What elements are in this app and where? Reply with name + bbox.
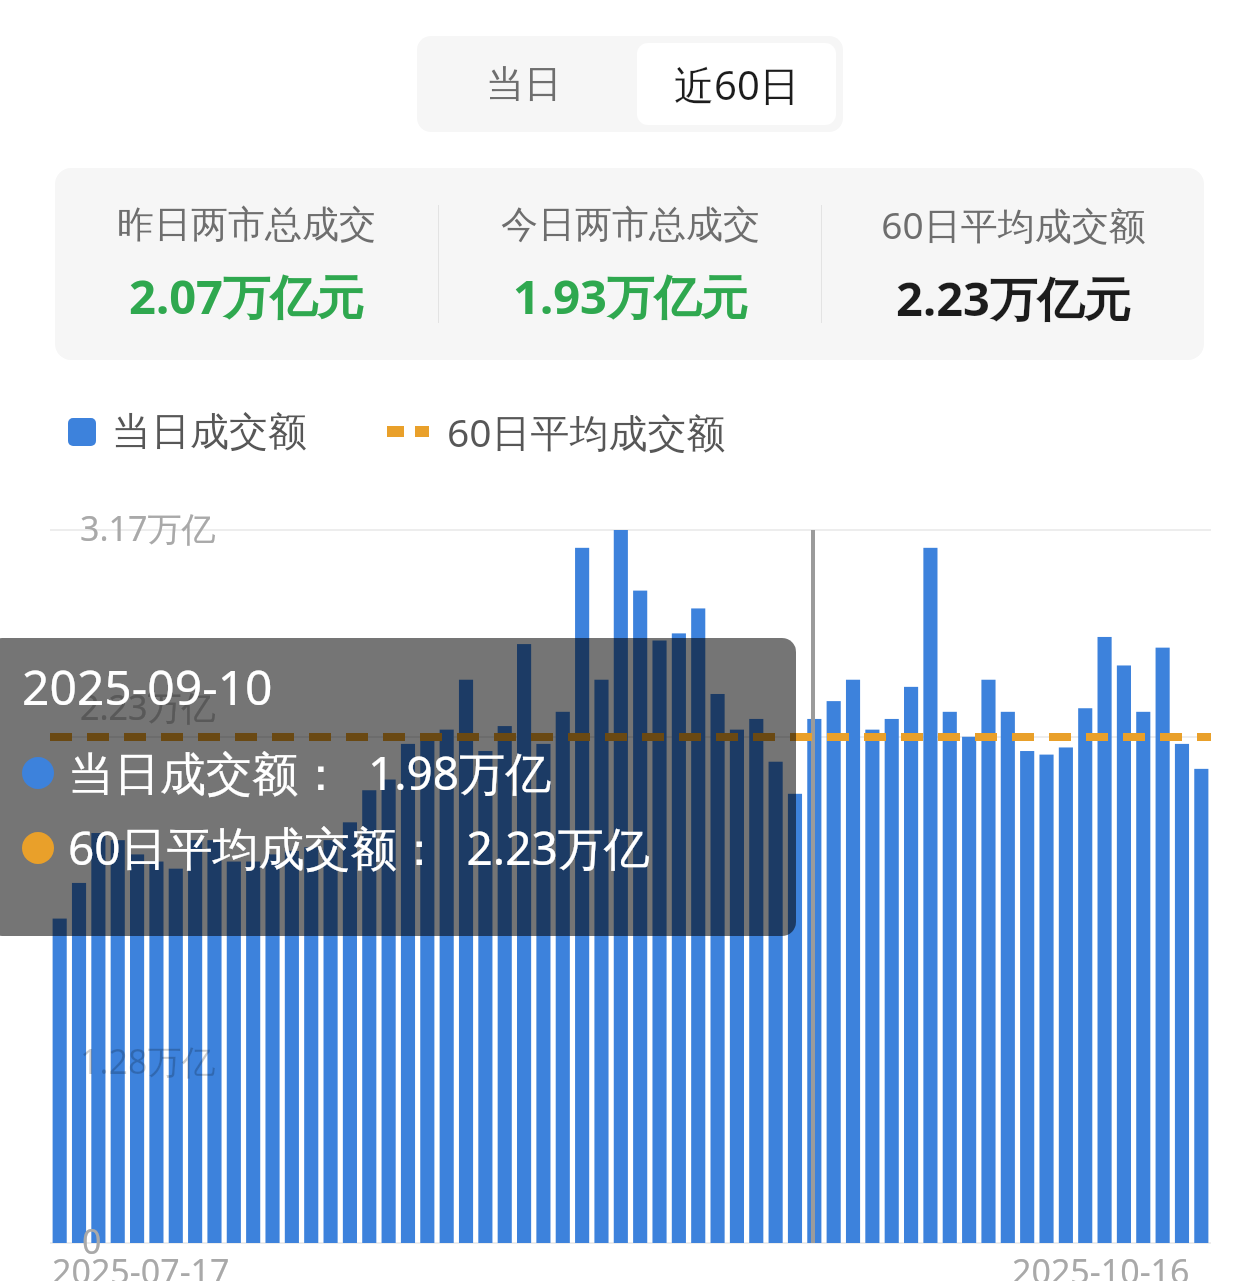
staticText: 今日两市总成交 [501, 201, 760, 248]
other: Data tooltip [0, 638, 796, 936]
staticText: 当日 [486, 60, 562, 108]
staticText: 近60日 [674, 57, 800, 112]
staticText: 60日平均成交额 [447, 405, 726, 458]
staticText: 60日平均成交额 [881, 199, 1146, 250]
staticText: 2025-10-16 [1012, 1248, 1190, 1281]
staticText: 3.17万亿 [80, 505, 216, 551]
staticText: 1.93万亿元 [513, 264, 748, 328]
staticText: 昨日两市总成交 [117, 201, 376, 248]
staticText: 60日平均成交额： 2.23万亿 [68, 816, 650, 879]
staticText: 2.07万亿元 [129, 264, 364, 328]
button[interactable]: 近60日 [637, 43, 836, 125]
staticText: 2025-07-17 [52, 1248, 230, 1281]
staticText: 2025-09-10 [22, 654, 273, 719]
staticText: 当日成交额： 1.98万亿 [68, 741, 552, 804]
staticText: 2.23万亿元 [896, 266, 1131, 330]
button[interactable]: 当日 [417, 36, 630, 132]
staticText: 1.28万亿 [80, 1038, 216, 1084]
staticText: 当日成交额 [112, 407, 307, 456]
staticText: 0 [82, 1218, 102, 1264]
staticText: 2.23万亿 [80, 684, 216, 730]
